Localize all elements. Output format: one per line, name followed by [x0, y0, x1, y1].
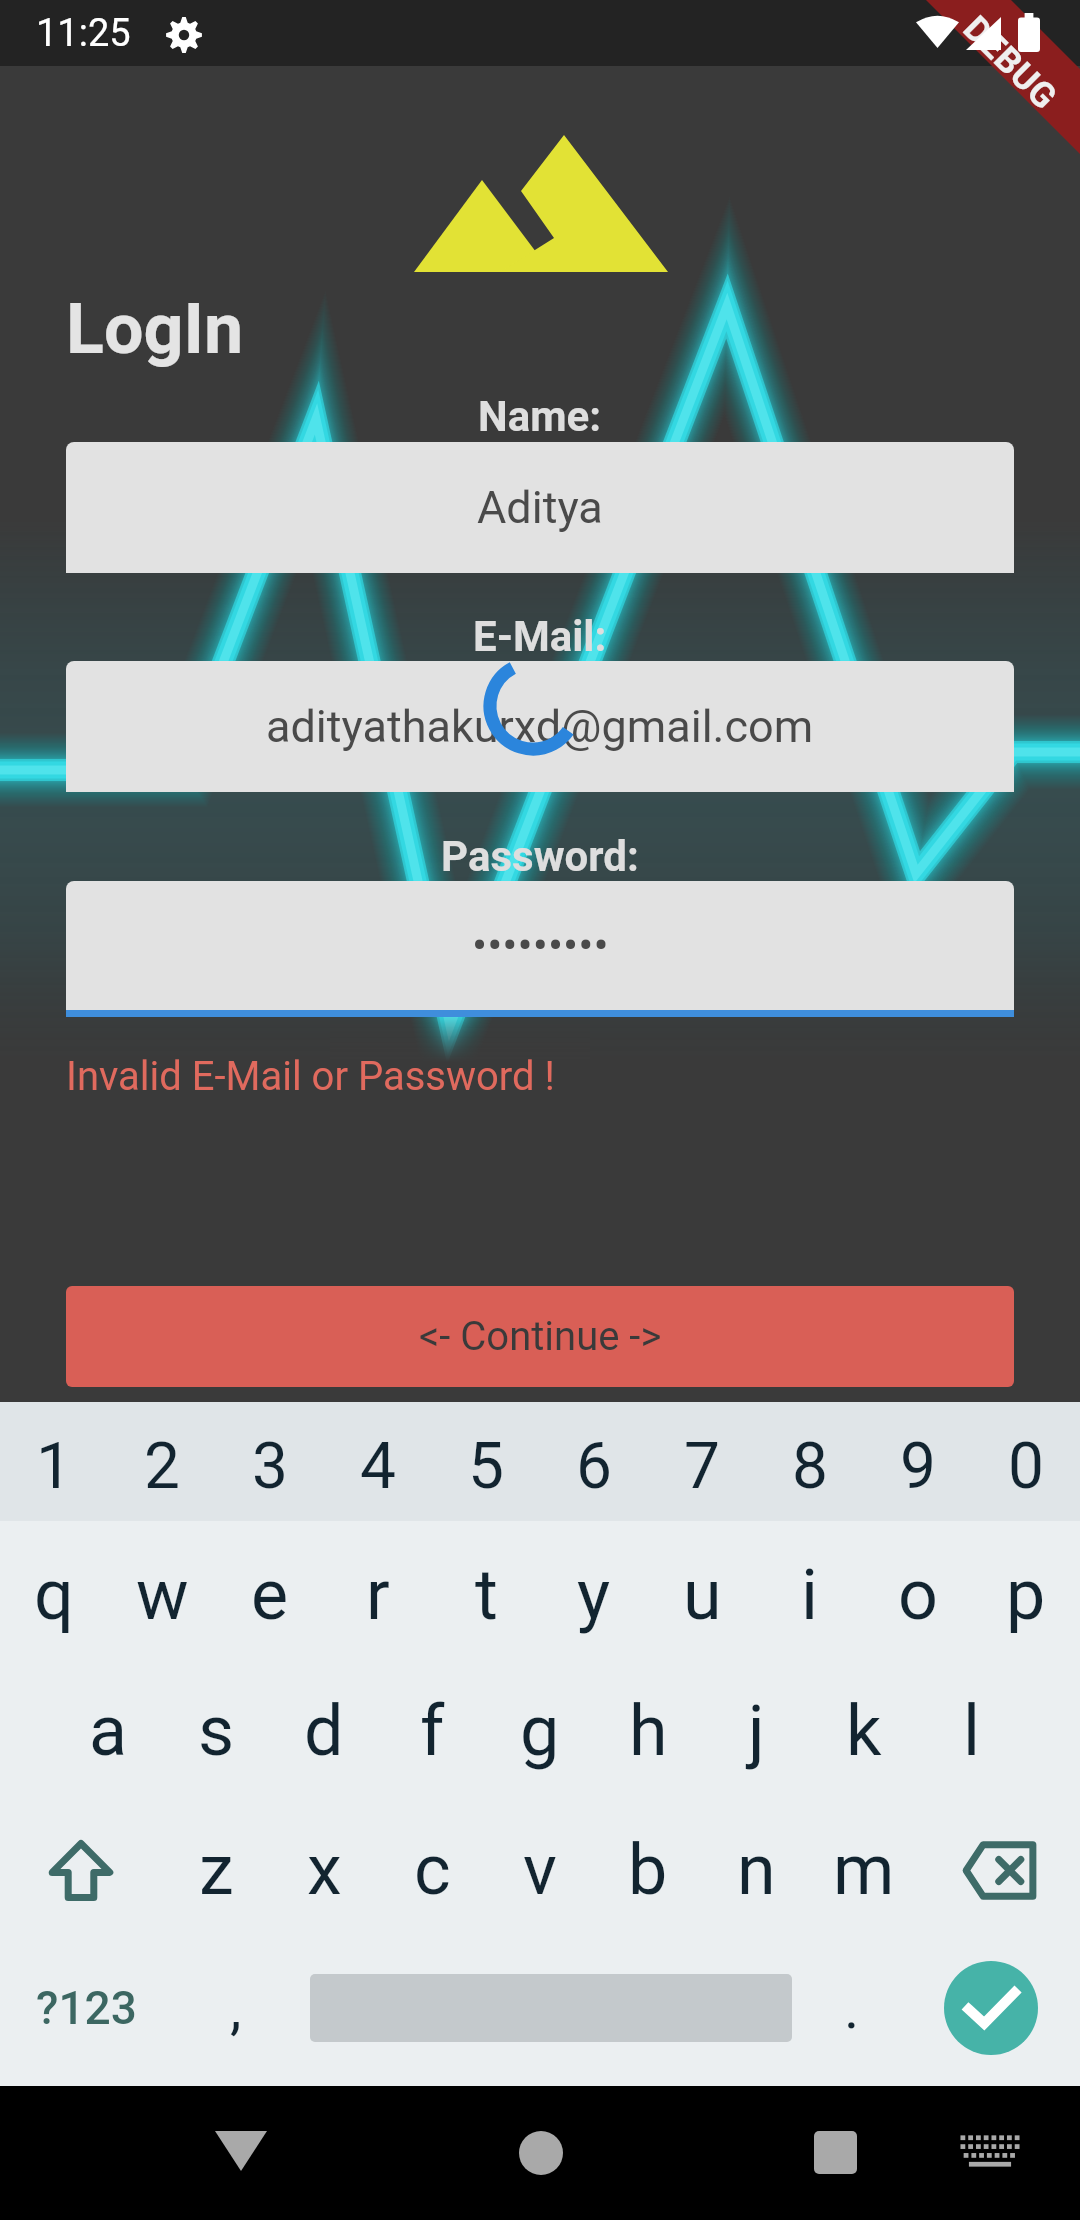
- staticText: ,: [230, 1974, 242, 2042]
- staticText: •••••••••: [472, 919, 609, 972]
- button[interactable]: z: [162, 1801, 270, 1939]
- staticText: p: [1006, 1554, 1046, 1636]
- staticText: k: [846, 1690, 882, 1772]
- button[interactable]: [300, 1939, 802, 2077]
- staticText: 8: [792, 1429, 828, 1504]
- staticText: h: [629, 1690, 668, 1772]
- staticText: m: [833, 1829, 895, 1911]
- button[interactable]: p: [972, 1526, 1080, 1664]
- button[interactable]: h: [594, 1662, 702, 1800]
- button[interactable]: o: [864, 1526, 972, 1664]
- button[interactable]: <- Continue ->: [66, 1286, 1014, 1387]
- button[interactable]: l: [918, 1662, 1026, 1800]
- button[interactable]: 6: [540, 1402, 648, 1521]
- staticText: adityathakurxd@gmail.com: [266, 700, 814, 753]
- staticText: b: [628, 1829, 668, 1911]
- staticText: .: [844, 1974, 860, 2042]
- staticText: Invalid E-Mail or Password !: [66, 1053, 555, 1100]
- staticText: j: [748, 1690, 765, 1772]
- button[interactable]: g: [486, 1662, 594, 1800]
- button[interactable]: y: [540, 1526, 648, 1664]
- staticText: Password:: [441, 832, 639, 881]
- staticText: <- Continue ->: [419, 1313, 662, 1360]
- button[interactable]: adityathakurxd@gmail.com: [66, 661, 1014, 792]
- staticText: l: [963, 1690, 981, 1772]
- button[interactable]: t: [432, 1526, 540, 1664]
- button[interactable]: 3: [216, 1402, 324, 1521]
- staticText: DEBUG: [955, 8, 1065, 118]
- staticText: Aditya: [477, 481, 603, 534]
- staticText: i: [801, 1554, 819, 1636]
- button[interactable]: i: [756, 1526, 864, 1664]
- staticText: 6: [576, 1429, 612, 1504]
- button[interactable]: Aditya: [66, 442, 1014, 573]
- button[interactable]: Settings: [166, 17, 202, 53]
- staticText: t: [475, 1554, 498, 1636]
- button[interactable]: m: [810, 1801, 918, 1939]
- button[interactable]: c: [378, 1801, 486, 1939]
- staticText: w: [136, 1554, 189, 1636]
- button[interactable]: f: [378, 1662, 486, 1800]
- staticText: 3: [252, 1429, 288, 1504]
- button[interactable]: •••••••••: [66, 881, 1014, 1010]
- button[interactable]: ?123: [0, 1939, 172, 2077]
- button[interactable]: s: [162, 1662, 270, 1800]
- button[interactable]: d: [270, 1662, 378, 1800]
- staticText: 9: [900, 1429, 936, 1504]
- staticText: z: [199, 1829, 234, 1911]
- button[interactable]: 5: [432, 1402, 540, 1521]
- button[interactable]: 1: [0, 1402, 108, 1521]
- button[interactable]: j: [702, 1662, 810, 1800]
- staticText: g: [520, 1690, 560, 1772]
- staticText: x: [307, 1829, 342, 1911]
- button[interactable]: 7: [648, 1402, 756, 1521]
- staticText: 1: [36, 1429, 72, 1504]
- button[interactable]: Backspace: [918, 1801, 1080, 1939]
- button[interactable]: .: [802, 1939, 902, 2077]
- button[interactable]: 8: [756, 1402, 864, 1521]
- staticText: e: [251, 1554, 289, 1636]
- button[interactable]: k: [810, 1662, 918, 1800]
- button[interactable]: a: [54, 1662, 162, 1800]
- staticText: 7: [684, 1429, 720, 1504]
- button[interactable]: 0: [972, 1402, 1080, 1521]
- button[interactable]: n: [702, 1801, 810, 1939]
- staticText: a: [89, 1690, 128, 1772]
- button[interactable]: e: [216, 1526, 324, 1664]
- staticText: LogIn: [66, 288, 244, 370]
- button[interactable]: b: [594, 1801, 702, 1939]
- button[interactable]: Enter: [902, 1939, 1080, 2077]
- staticText: o: [898, 1554, 938, 1636]
- button[interactable]: Shift: [0, 1801, 162, 1939]
- button[interactable]: 9: [864, 1402, 972, 1521]
- staticText: 5: [468, 1429, 504, 1504]
- button[interactable]: w: [108, 1526, 216, 1664]
- staticText: c: [414, 1829, 451, 1911]
- staticText: ?123: [36, 1981, 137, 2035]
- staticText: E-Mail:: [473, 612, 607, 661]
- button[interactable]: v: [486, 1801, 594, 1939]
- button[interactable]: ,: [172, 1939, 300, 2077]
- button[interactable]: Recent apps: [814, 2131, 857, 2174]
- button[interactable]: q: [0, 1526, 108, 1664]
- button[interactable]: 4: [324, 1402, 432, 1521]
- button[interactable]: Back: [215, 2131, 267, 2171]
- staticText: y: [577, 1554, 611, 1636]
- staticText: s: [198, 1690, 235, 1772]
- staticText: 4: [360, 1429, 396, 1504]
- staticText: d: [304, 1690, 344, 1772]
- staticText: 0: [1008, 1429, 1044, 1504]
- staticText: f: [420, 1690, 445, 1772]
- staticText: 2: [144, 1429, 180, 1504]
- staticText: u: [683, 1554, 722, 1636]
- staticText: n: [737, 1829, 776, 1911]
- button[interactable]: r: [324, 1526, 432, 1664]
- button[interactable]: u: [648, 1526, 756, 1664]
- staticText: v: [523, 1829, 557, 1911]
- staticText: r: [366, 1554, 390, 1636]
- button[interactable]: 2: [108, 1402, 216, 1521]
- staticText: q: [34, 1554, 74, 1636]
- button[interactable]: x: [270, 1801, 378, 1939]
- button[interactable]: Home: [519, 2131, 563, 2175]
- button[interactable]: Switch keyboard: [959, 2134, 1021, 2168]
